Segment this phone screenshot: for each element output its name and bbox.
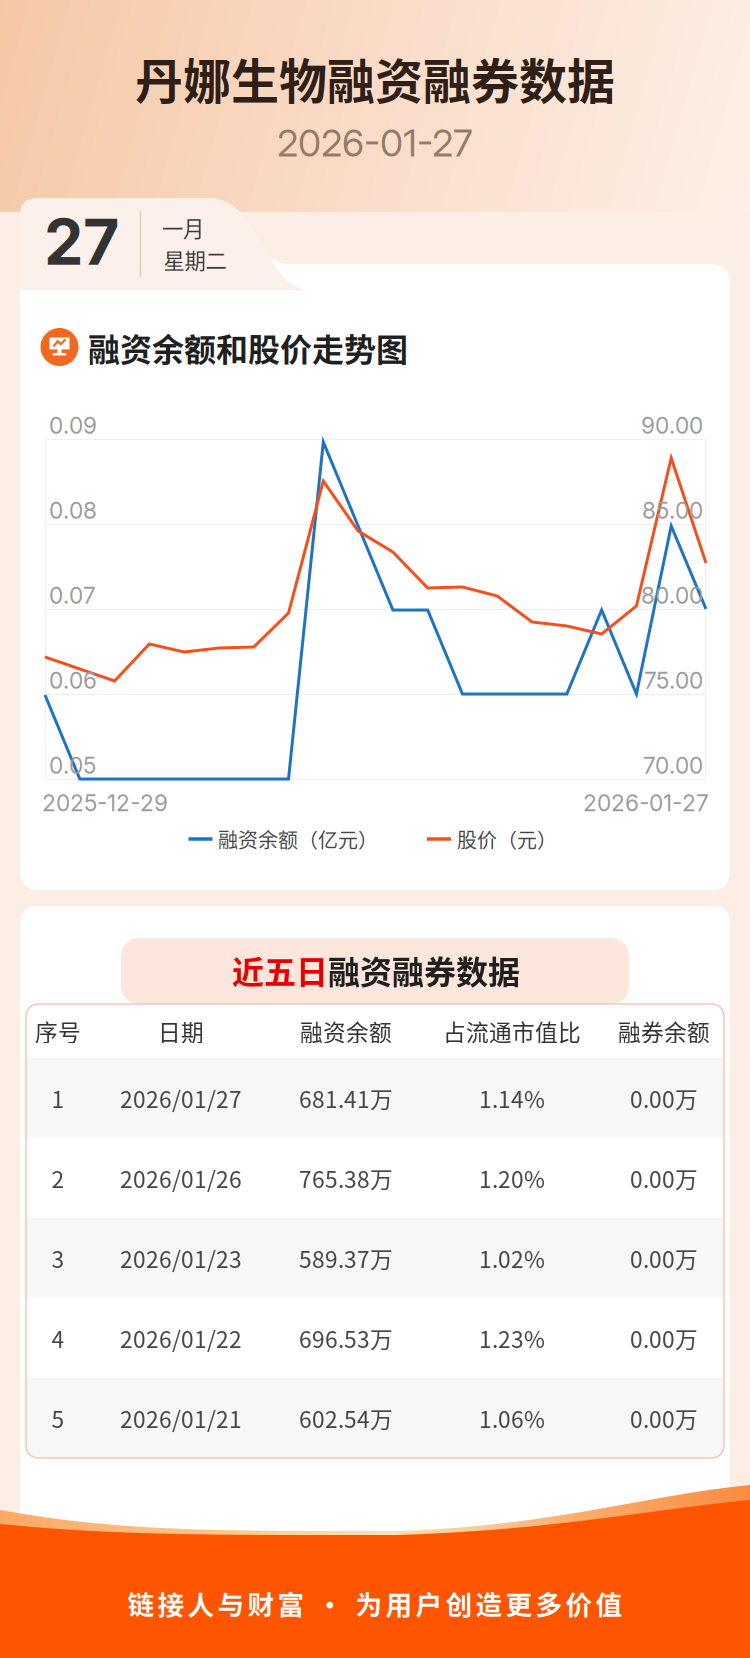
staticText: 2026-01-27	[583, 789, 709, 817]
button[interactable]: 2	[26, 1138, 724, 1218]
staticText: 1	[51, 1082, 64, 1114]
staticText: 1.14%	[479, 1082, 545, 1114]
staticText: 2026/01/21	[120, 1402, 242, 1434]
button[interactable]: 1	[26, 1058, 724, 1138]
staticText: 602.54万	[299, 1402, 393, 1434]
staticText: 589.37万	[299, 1242, 393, 1274]
staticText: 2	[51, 1162, 64, 1194]
staticText: 3	[51, 1242, 64, 1274]
staticText: 5	[51, 1402, 64, 1434]
staticText: 681.41万	[299, 1082, 393, 1114]
staticText: 0.06	[49, 667, 97, 694]
staticText: 日期	[158, 1015, 204, 1047]
staticText: 2026/01/26	[120, 1162, 242, 1194]
staticText: 90.00	[641, 412, 703, 439]
staticText: 80.00	[641, 582, 703, 609]
staticText: 0.05	[49, 752, 96, 779]
staticText: 0.08	[49, 497, 97, 524]
staticText: 70.00	[643, 752, 703, 779]
staticText: 星期二	[163, 244, 226, 275]
staticText: 0.00万	[630, 1162, 698, 1194]
staticText: 融资余额	[300, 1015, 392, 1047]
staticText: 近五日	[232, 947, 328, 993]
staticText: 75.00	[644, 667, 703, 694]
staticText: 0.00万	[630, 1082, 698, 1114]
staticText: 0.00万	[630, 1402, 698, 1434]
staticText: 股价（元）	[457, 824, 557, 853]
staticText: 丹娜生物融资融券数据	[135, 43, 615, 113]
staticText: 链接人与财富 · 为用户创造更多价值	[127, 1584, 622, 1622]
staticText: 0.09	[49, 412, 97, 439]
staticText: 1.23%	[479, 1322, 545, 1354]
staticText: 融资融券数据	[328, 947, 520, 993]
staticText: 一月	[162, 212, 204, 243]
staticText: 占流通市值比	[443, 1015, 581, 1047]
staticText: 4	[51, 1322, 64, 1354]
staticText: 27	[44, 204, 119, 280]
staticText: 2025-12-29	[42, 789, 168, 817]
staticText: 0.00万	[630, 1322, 698, 1354]
staticText: 序号	[35, 1015, 81, 1047]
staticText: 2026/01/23	[120, 1242, 242, 1274]
staticText: 765.38万	[299, 1162, 393, 1194]
button[interactable]: 序号	[26, 1004, 724, 1058]
staticText: 融券余额	[618, 1015, 710, 1047]
button[interactable]: 3	[26, 1218, 724, 1298]
button[interactable]: 5	[26, 1378, 724, 1458]
staticText: 0.00万	[630, 1242, 698, 1274]
staticText: 2026-01-27	[277, 120, 473, 166]
staticText: 0.07	[49, 582, 96, 609]
staticText: 1.20%	[479, 1162, 545, 1194]
staticText: 85.00	[642, 497, 703, 524]
staticText: 2026/01/22	[120, 1322, 242, 1354]
staticText: 融资余额（亿元）	[218, 824, 378, 853]
staticText: 融资余额和股价走势图	[88, 324, 408, 371]
staticText: 1.06%	[479, 1402, 545, 1434]
staticText: 696.53万	[299, 1322, 393, 1354]
staticText: 2026/01/27	[120, 1082, 242, 1114]
staticText: 1.02%	[479, 1242, 545, 1274]
button[interactable]: 4	[26, 1298, 724, 1378]
